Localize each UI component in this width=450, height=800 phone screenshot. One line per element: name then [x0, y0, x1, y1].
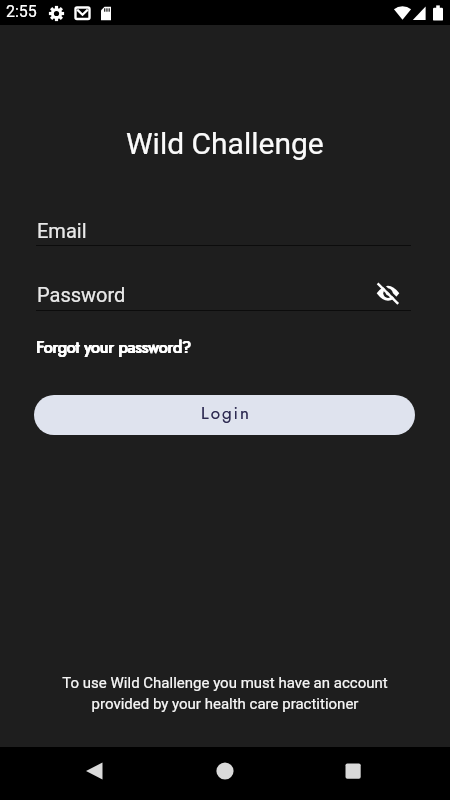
button[interactable] — [376, 281, 400, 305]
staticText: Forgot your password? — [37, 336, 192, 359]
staticText: Email — [37, 219, 87, 242]
button[interactable] — [78, 755, 110, 787]
button[interactable]: Login — [34, 395, 415, 435]
button[interactable]: Forgot your password? — [36, 336, 191, 359]
staticText: Password — [37, 283, 126, 306]
button[interactable]: Email — [36, 200, 411, 247]
button[interactable]: Password — [36, 264, 411, 311]
staticText: 2:55 — [6, 2, 37, 21]
staticText: To use Wild Challenge you must have an a… — [0, 674, 450, 712]
staticText: Forgot your password? — [36, 336, 191, 359]
button[interactable] — [209, 755, 241, 787]
staticText: Wild Challenge — [126, 126, 324, 161]
staticText: Login — [201, 401, 251, 426]
staticText: Forgot your password? — [36, 336, 191, 359]
button[interactable] — [337, 755, 369, 787]
staticText: Login — [201, 401, 251, 426]
